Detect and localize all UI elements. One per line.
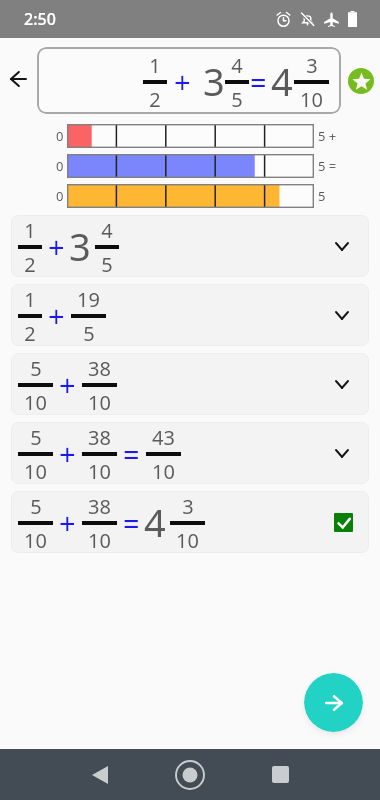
button[interactable]: 1 — [11, 284, 369, 346]
staticText: 5 — [30, 424, 42, 451]
staticText: 1 — [24, 286, 36, 313]
staticText: 0 — [56, 187, 64, 205]
staticText: 10 — [24, 458, 47, 484]
staticText: 5 — [101, 251, 113, 277]
staticText: 10 — [300, 86, 323, 113]
button[interactable]: Home — [145, 749, 235, 800]
staticText: 5 — [83, 320, 95, 346]
staticText: = — [123, 434, 140, 473]
button[interactable]: 5 — [11, 491, 369, 553]
staticText: 4 — [101, 217, 113, 244]
staticText: 5 + — [318, 127, 337, 145]
staticText: 2 — [149, 86, 161, 113]
staticText: 5 — [30, 355, 42, 382]
button[interactable]: Next — [304, 673, 363, 732]
staticText: 5 = — [318, 157, 337, 175]
staticText: = — [123, 503, 140, 542]
staticText: 38 — [88, 493, 111, 520]
staticText: 43 — [152, 424, 175, 451]
staticText: + — [174, 62, 191, 101]
staticText: 5 — [318, 187, 326, 205]
staticText: + — [59, 365, 76, 404]
staticText: + — [48, 227, 65, 266]
staticText: 19 — [77, 286, 100, 313]
staticText: 10 — [24, 389, 47, 415]
button[interactable]: 5 — [11, 422, 369, 484]
staticText: + — [59, 434, 76, 473]
staticText: 3 — [306, 52, 318, 79]
staticText: 4 — [144, 496, 166, 548]
staticText: 1 — [24, 217, 36, 244]
staticText: = — [250, 62, 267, 101]
staticText: 1 — [149, 52, 161, 79]
button[interactable]: Back — [55, 749, 145, 800]
staticText: 3 — [182, 493, 194, 520]
staticText: 3 — [203, 55, 225, 107]
button[interactable]: 5 — [11, 353, 369, 415]
staticText: 2 — [24, 320, 36, 346]
staticText: 2:50 — [24, 8, 56, 30]
button[interactable]: Recents — [235, 749, 325, 800]
staticText: + — [48, 296, 65, 335]
staticText: 5 — [231, 86, 243, 113]
button[interactable]: 1 — [37, 47, 341, 114]
button[interactable]: 1 — [11, 215, 369, 277]
staticText: 38 — [88, 424, 111, 451]
staticText: 10 — [152, 458, 175, 484]
button[interactable]: Back — [0, 47, 37, 114]
staticText: + — [59, 503, 76, 542]
button[interactable]: Favourite — [341, 47, 380, 114]
staticText: 10 — [88, 458, 111, 484]
staticText: 4 — [231, 52, 243, 79]
staticText: 3 — [69, 220, 91, 272]
staticText: 2 — [24, 251, 36, 277]
staticText: 10 — [24, 527, 47, 553]
staticText: 10 — [88, 527, 111, 553]
staticText: 4 — [271, 55, 293, 107]
staticText: 38 — [88, 355, 111, 382]
staticText: 0 — [56, 157, 64, 175]
staticText: 0 — [56, 127, 64, 145]
staticText: 5 — [30, 493, 42, 520]
staticText: 10 — [88, 389, 111, 415]
staticText: 10 — [176, 527, 199, 553]
